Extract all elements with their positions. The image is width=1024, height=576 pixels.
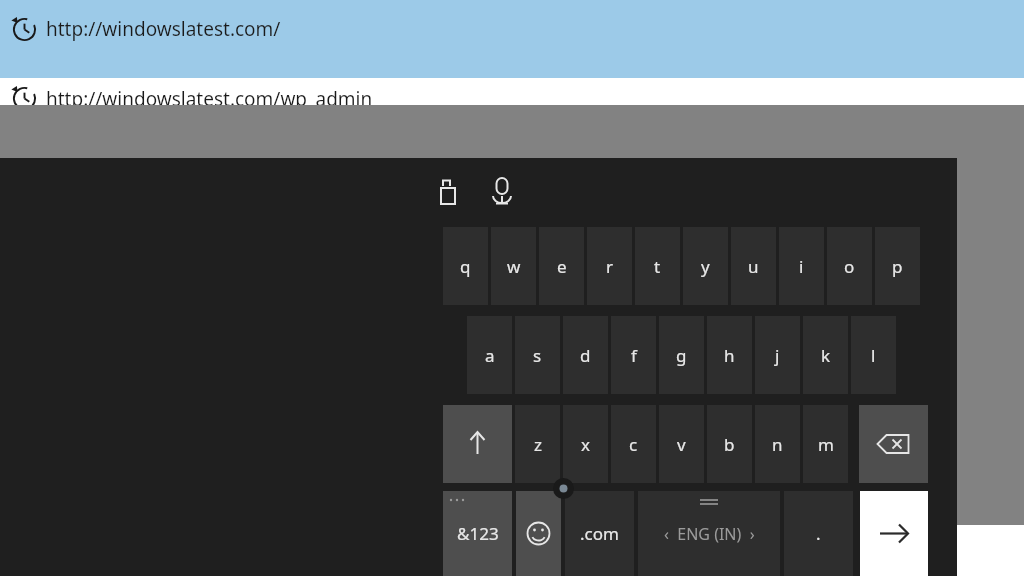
button[interactable]: d xyxy=(563,316,608,394)
staticText: e xyxy=(557,255,567,278)
button[interactable]: Emoji xyxy=(516,491,561,576)
button[interactable]: e xyxy=(539,227,584,305)
staticText: x xyxy=(581,433,590,456)
button[interactable]: Enter xyxy=(860,491,928,576)
button[interactable]: k xyxy=(803,316,848,394)
staticText: m xyxy=(818,433,834,456)
button[interactable]: i xyxy=(779,227,824,305)
button[interactable]: t xyxy=(635,227,680,305)
button[interactable]: Shift xyxy=(443,405,512,483)
button[interactable]: r xyxy=(587,227,632,305)
staticText: s xyxy=(533,344,542,367)
staticText: u xyxy=(748,255,759,278)
staticText: v xyxy=(677,433,686,456)
button[interactable]: Handwriting panel xyxy=(430,172,470,212)
button[interactable]: j xyxy=(755,316,800,394)
button[interactable]: l xyxy=(851,316,896,394)
staticText: ‹ ENG (IN) › xyxy=(664,523,755,545)
staticText: &123 xyxy=(457,522,499,545)
staticText: j xyxy=(775,344,780,367)
staticText: i xyxy=(799,255,804,278)
button[interactable]: z xyxy=(515,405,560,483)
staticText: y xyxy=(701,255,710,278)
staticText: n xyxy=(772,433,783,456)
button[interactable]: g xyxy=(659,316,704,394)
button[interactable]: &123 xyxy=(443,491,512,576)
button[interactable]: p xyxy=(875,227,920,305)
button[interactable]: c xyxy=(611,405,656,483)
button[interactable]: h xyxy=(707,316,752,394)
button[interactable]: Voice input xyxy=(482,170,522,212)
staticText: b xyxy=(724,433,735,456)
staticText: http://windowslatest.com/ xyxy=(46,16,281,42)
staticText: c xyxy=(629,433,638,456)
button[interactable]: .com xyxy=(565,491,634,576)
staticText: k xyxy=(821,344,831,367)
staticText: d xyxy=(580,344,591,367)
button[interactable]: Resize keyboard xyxy=(553,478,574,499)
staticText: p xyxy=(892,255,903,278)
button[interactable]: http://windowslatest.com/ xyxy=(0,0,1024,78)
button[interactable]: x xyxy=(563,405,608,483)
staticText: g xyxy=(676,344,687,367)
button[interactable]: . xyxy=(784,491,853,576)
button[interactable]: o xyxy=(827,227,872,305)
staticText: a xyxy=(485,344,495,367)
button[interactable]: u xyxy=(731,227,776,305)
button[interactable]: a xyxy=(467,316,512,394)
staticText: q xyxy=(460,255,471,278)
button[interactable]: q xyxy=(443,227,488,305)
button[interactable]: v xyxy=(659,405,704,483)
button[interactable]: f xyxy=(611,316,656,394)
button[interactable]: s xyxy=(515,316,560,394)
staticText: t xyxy=(654,255,661,278)
staticText: http://windowslatest.com/wp_admin xyxy=(46,86,373,112)
staticText: w xyxy=(507,255,521,278)
button[interactable]: Backspace xyxy=(859,405,928,483)
staticText: .com xyxy=(580,522,619,545)
button[interactable]: w xyxy=(491,227,536,305)
staticText: r xyxy=(606,255,614,278)
button[interactable]: ‹ ENG (IN) › xyxy=(638,491,780,576)
staticText: l xyxy=(871,344,876,367)
staticText: . xyxy=(816,522,821,545)
staticText: f xyxy=(631,344,637,367)
staticText: h xyxy=(724,344,735,367)
button[interactable]: m xyxy=(803,405,848,483)
staticText: z xyxy=(534,433,542,456)
button[interactable]: http://windowslatest.com/wp_admin xyxy=(0,78,1024,108)
button[interactable]: n xyxy=(755,405,800,483)
staticText: o xyxy=(844,255,855,278)
button[interactable]: b xyxy=(707,405,752,483)
button[interactable]: y xyxy=(683,227,728,305)
